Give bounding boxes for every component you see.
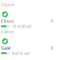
staticText: 8 of 15 set (12, 51, 29, 56)
staticText: Churc (1, 18, 14, 24)
staticText: Good (1, 45, 10, 50)
button[interactable]: Good (1, 44, 59, 56)
staticText: 12 of 20 set (12, 24, 31, 29)
staticText: Comm (1, 29, 14, 34)
button[interactable]: Churc (1, 17, 59, 29)
staticText: Church (1, 2, 14, 7)
